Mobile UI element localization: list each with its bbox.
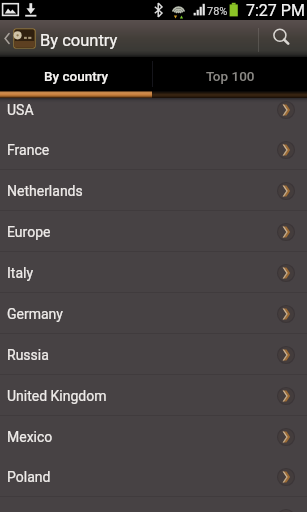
staticText: By country [40,31,118,50]
button[interactable]: Search [259,20,307,57]
button[interactable]: Russia [0,334,307,375]
button[interactable]: By country [0,57,152,91]
staticText: Russia [7,347,49,363]
button[interactable]: United Kingdom [0,375,307,416]
button[interactable]: USA [0,89,307,130]
button[interactable]: Top 100 [153,57,307,91]
staticText: Europe [7,224,51,240]
button[interactable]: Netherlands [0,170,307,211]
staticText: Top 100 [206,68,255,84]
staticText: Netherlands [7,183,83,199]
staticText: Italy [7,265,34,281]
staticText: Poland [7,469,51,485]
staticText: By country [44,68,109,84]
staticText: Mexico [7,429,53,445]
staticText: 78% [207,5,228,18]
button[interactable]: Italy [0,252,307,293]
staticText: 7:27 PM [246,1,305,20]
staticText: Germany [7,306,63,322]
button[interactable]: Up [0,20,118,57]
button[interactable]: France [0,129,307,170]
button[interactable]: Europe [0,211,307,252]
button[interactable]: Poland [0,456,307,497]
staticText: France [7,142,50,158]
staticText: USA [7,102,34,118]
button[interactable]: Germany [0,293,307,334]
button[interactable]: Mexico [0,416,307,457]
staticText: United Kingdom [7,388,107,404]
